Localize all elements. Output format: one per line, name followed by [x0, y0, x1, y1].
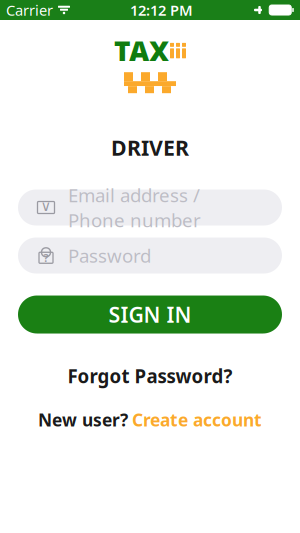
button[interactable]: Forgot Password?	[55, 359, 244, 392]
staticText: TAX	[114, 32, 169, 69]
staticText: ?	[43, 251, 48, 265]
staticText: ∨	[40, 198, 51, 214]
staticText: New user?	[38, 408, 128, 431]
staticText: Forgot Password?	[67, 363, 232, 388]
staticText: Email address / Phone number	[68, 183, 201, 232]
button[interactable]: SIGN IN	[18, 295, 282, 333]
button[interactable]: ?	[18, 237, 282, 273]
staticText: 12:12 PM	[130, 0, 193, 20]
button[interactable]: ∨	[18, 189, 282, 225]
button[interactable]: New user?	[26, 404, 274, 435]
staticText: SIGN IN	[108, 300, 191, 329]
staticText: Password	[68, 243, 151, 268]
staticText: Carrier	[6, 0, 53, 20]
staticText: Create account	[132, 408, 262, 431]
staticText: DRIVER	[111, 133, 189, 161]
